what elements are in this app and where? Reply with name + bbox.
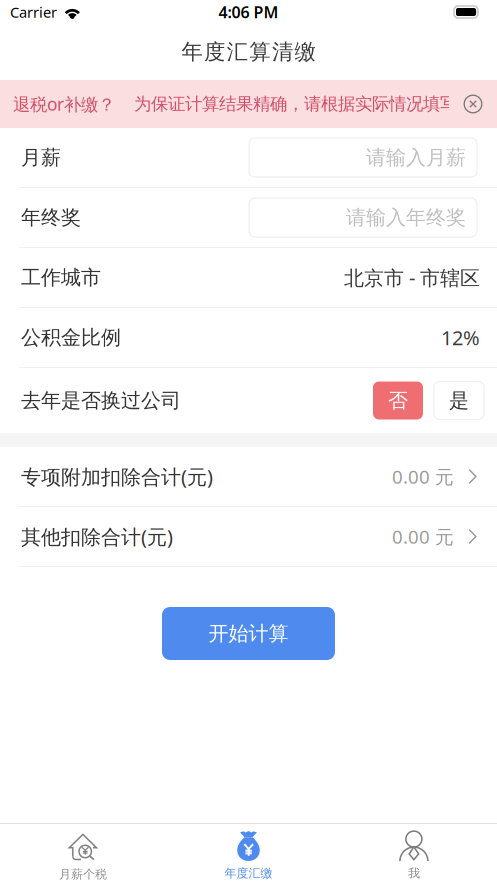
- staticText: 专项附加扣除合计(元): [21, 463, 213, 490]
- staticText: 请输入年终奖: [346, 205, 466, 230]
- staticText: 12%: [441, 324, 480, 351]
- staticText: 去年是否换过公司: [21, 388, 181, 413]
- staticText: 为保证计算结果精确，请根据实际情况填写相关信息: [134, 93, 497, 115]
- button[interactable]: 专项附加扣除合计(元): [0, 447, 497, 506]
- staticText: 公积金比例: [21, 325, 121, 350]
- staticText: 0.00 元: [392, 524, 454, 549]
- staticText: 月薪个税: [59, 867, 107, 882]
- staticText: 年度汇缴: [224, 866, 272, 881]
- button[interactable]: 否: [373, 381, 423, 419]
- button[interactable]: 我: [331, 824, 497, 883]
- staticText: Carrier: [10, 2, 57, 22]
- button[interactable]: 关闭提示: [451, 82, 495, 126]
- button[interactable]: 工作城市: [0, 248, 497, 307]
- staticText: 北京市 - 市辖区: [344, 264, 480, 291]
- button[interactable]: 年度汇缴: [166, 824, 331, 883]
- staticText: 请输入月薪: [366, 145, 466, 170]
- staticText: 4:06 PM: [218, 1, 278, 23]
- staticText: 工作城市: [21, 265, 101, 290]
- button[interactable]: 开始计算: [162, 607, 335, 660]
- staticText: 是: [449, 388, 469, 413]
- button[interactable]: 月薪个税: [0, 824, 166, 883]
- staticText: 开始计算: [208, 621, 288, 646]
- button[interactable]: 是: [434, 381, 484, 419]
- staticText: 我: [408, 866, 420, 881]
- button[interactable]: 其他扣除合计(元): [0, 507, 497, 566]
- button[interactable]: 公积金比例: [0, 308, 497, 367]
- staticText: 否: [388, 388, 408, 413]
- staticText: 年终奖: [21, 205, 81, 230]
- staticText: 其他扣除合计(元): [21, 523, 173, 550]
- staticText: 退税or补缴？: [13, 92, 115, 115]
- staticText: 月薪: [21, 145, 61, 170]
- staticText: 0.00 元: [392, 464, 454, 489]
- staticText: 年度汇算清缴: [181, 39, 315, 65]
